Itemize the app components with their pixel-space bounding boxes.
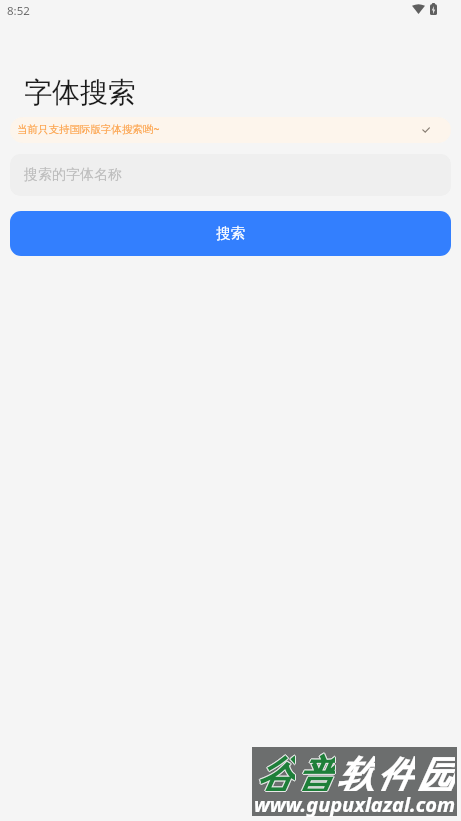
staticText: 园 [416,751,455,791]
button[interactable]: 搜索 [10,211,451,256]
staticText: 谷 [256,750,295,790]
staticText: www.gupuxlazal.com [254,791,456,818]
staticText: 谷 [256,751,295,791]
staticText: 软 [336,751,375,791]
staticText: 字体搜索 [24,75,136,106]
staticText: 件 [376,751,415,791]
staticText: 谷 [257,751,296,791]
staticText: 普 [297,751,336,791]
staticText: 谷 [256,752,295,792]
staticText: 搜索的字体名称 [24,166,122,184]
button[interactable]: 当前只支持国际版字体搜索哟~ [10,117,451,143]
staticText: 当前只支持国际版字体搜索哟~ [17,122,160,136]
staticText: 谷 [255,751,294,791]
other: Confirm [422,127,430,133]
staticText: 普 [296,750,335,790]
staticText: 8:52 [7,3,30,19]
staticText: 普 [295,751,334,791]
staticText: 普 [296,751,335,791]
button[interactable]: 搜索的字体名称 [10,154,451,196]
staticText: 普 [296,752,335,792]
staticText: 搜索 [216,224,245,242]
